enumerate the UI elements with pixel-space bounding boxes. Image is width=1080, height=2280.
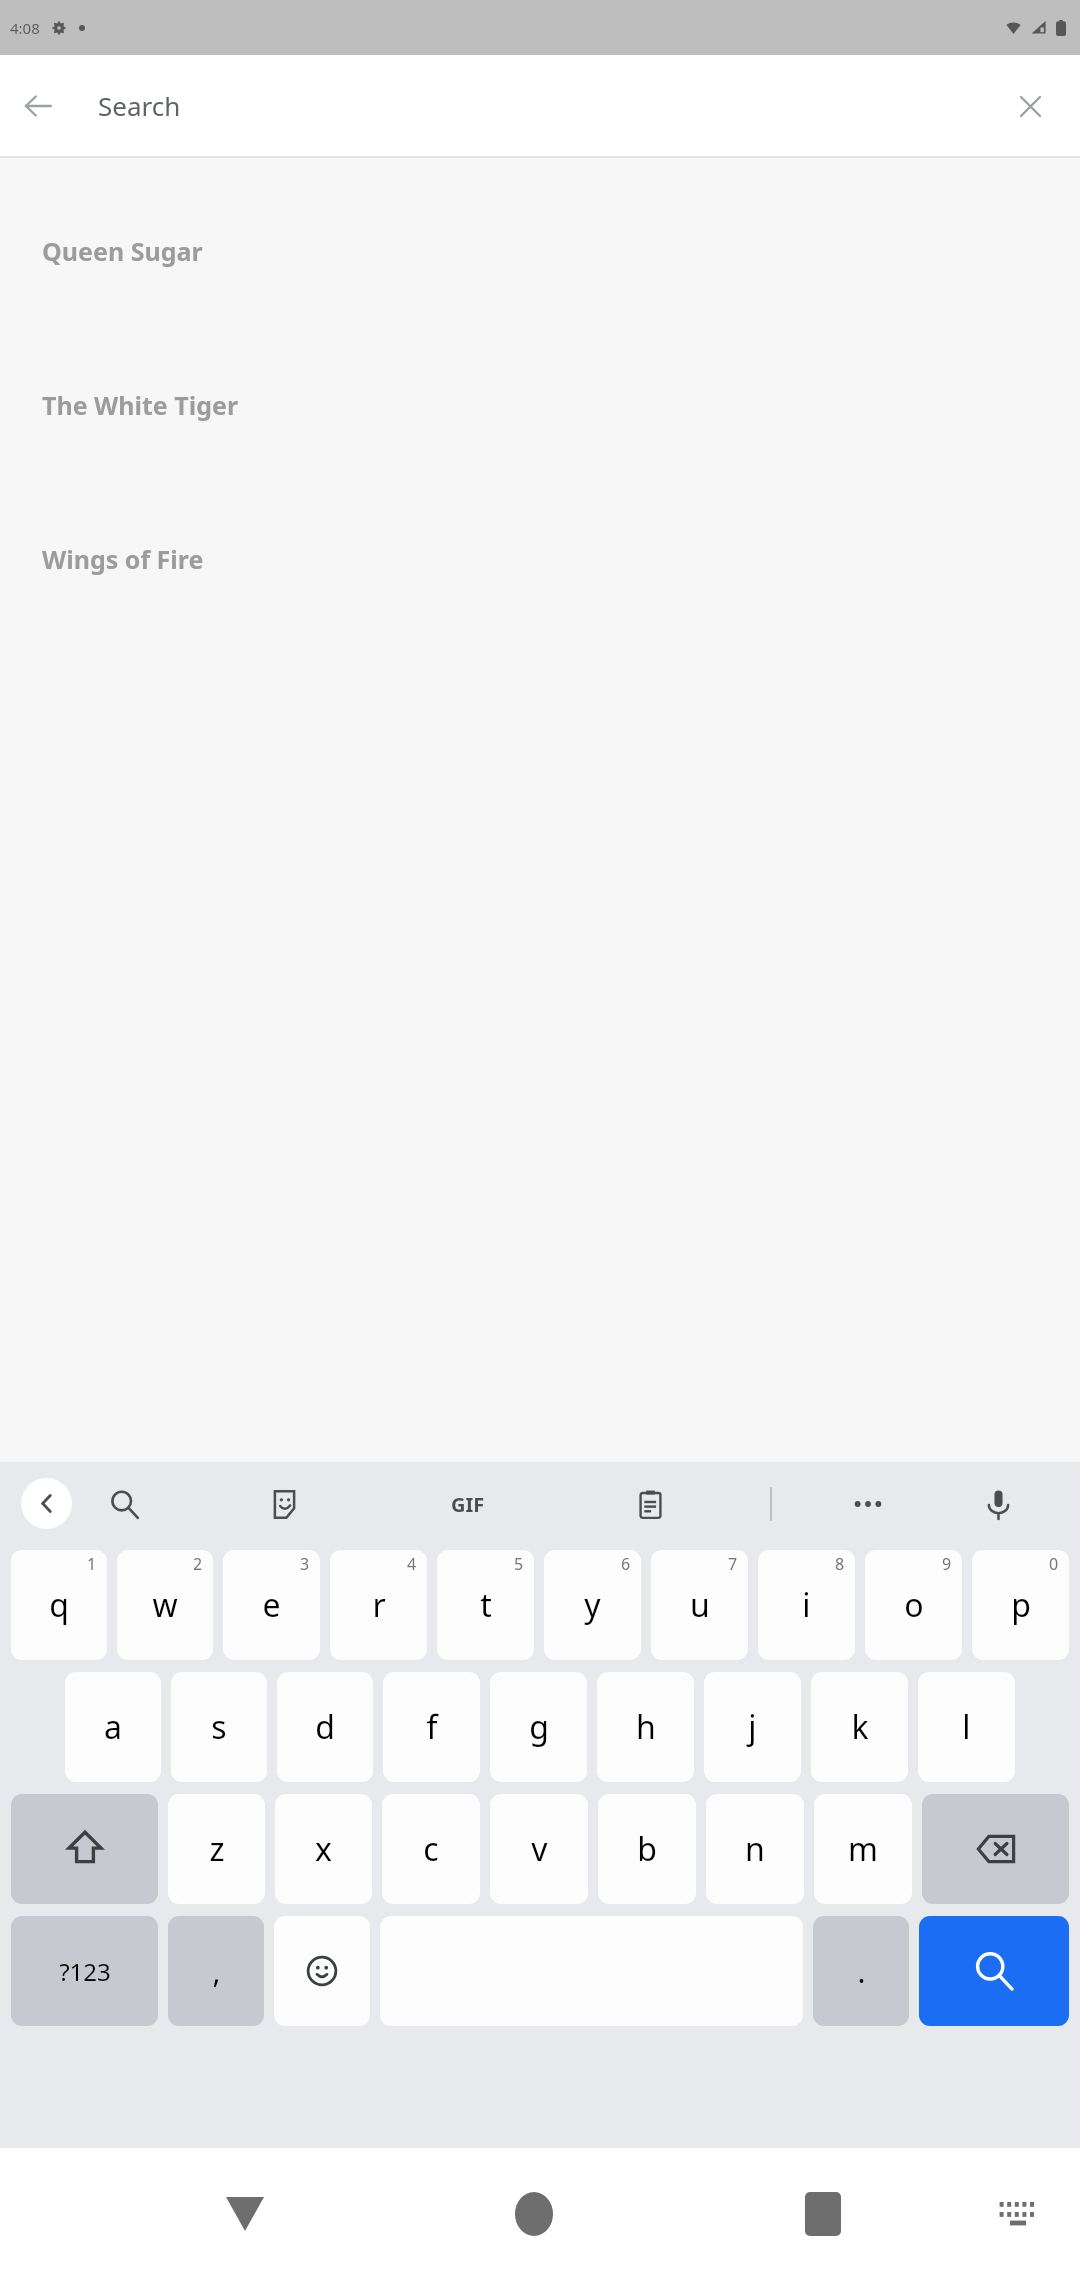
staticText: 3 <box>300 1553 310 1575</box>
staticText: The White Tiger <box>42 388 239 422</box>
staticText: h <box>636 1705 656 1749</box>
staticText: r <box>372 1583 386 1627</box>
staticText: f <box>426 1705 438 1749</box>
button[interactable]: a <box>65 1672 161 1782</box>
staticText: p <box>1011 1583 1031 1627</box>
staticText: w <box>152 1583 178 1627</box>
staticText: 4:08 <box>10 18 40 38</box>
button[interactable]: r <box>330 1550 427 1660</box>
button[interactable]: o <box>865 1550 962 1660</box>
button[interactable]: f <box>383 1672 480 1782</box>
button[interactable]: b <box>598 1794 696 1904</box>
button[interactable]: GIF <box>443 1479 493 1529</box>
staticText: u <box>690 1583 710 1627</box>
button[interactable]: c <box>382 1794 480 1904</box>
button[interactable]: Queen Sugar <box>0 174 1080 328</box>
button[interactable]: Home <box>489 2169 579 2259</box>
staticText: b <box>637 1827 657 1871</box>
staticText: 6 <box>621 1553 631 1575</box>
staticText: s <box>211 1705 227 1749</box>
button[interactable]: Switch keyboard <box>978 2174 1058 2254</box>
staticText: j <box>748 1705 757 1749</box>
button[interactable]: Clear search <box>992 68 1068 144</box>
button[interactable]: p <box>972 1550 1069 1660</box>
staticText: l <box>962 1705 971 1749</box>
button[interactable]: d <box>277 1672 373 1782</box>
staticText: Wings of Fire <box>42 542 204 576</box>
button[interactable]: Navigate up <box>0 68 76 144</box>
staticText: 9 <box>942 1553 952 1575</box>
staticText: m <box>848 1827 878 1871</box>
button[interactable]: Search <box>99 1479 149 1529</box>
button[interactable]: v <box>490 1794 588 1904</box>
button[interactable]: s <box>171 1672 267 1782</box>
staticText: q <box>49 1583 69 1627</box>
staticText: v <box>531 1827 548 1871</box>
button[interactable]: More options <box>843 1479 893 1529</box>
button[interactable]: Clipboard <box>625 1479 675 1529</box>
button[interactable]: j <box>704 1672 801 1782</box>
staticText: g <box>529 1705 549 1749</box>
staticText: t <box>480 1583 492 1627</box>
staticText: 8 <box>835 1553 845 1575</box>
button[interactable]: Backspace <box>922 1794 1069 1904</box>
staticText: ?123 <box>59 1955 111 1988</box>
staticText: z <box>209 1827 225 1871</box>
button[interactable]: l <box>918 1672 1015 1782</box>
button[interactable]: Back <box>200 2169 290 2259</box>
button[interactable]: Show toolbar <box>21 1478 72 1529</box>
staticText: e <box>262 1583 281 1627</box>
button[interactable]: x <box>275 1794 372 1904</box>
button[interactable]: t <box>437 1550 534 1660</box>
button[interactable]: w <box>117 1550 213 1660</box>
button[interactable]: g <box>490 1672 587 1782</box>
button[interactable]: n <box>706 1794 804 1904</box>
staticText: , <box>212 1951 221 1992</box>
button[interactable]: The White Tiger <box>0 328 1080 482</box>
button[interactable]: . <box>813 1916 909 2026</box>
button[interactable]: Stickers <box>259 1479 309 1529</box>
button[interactable]: m <box>814 1794 912 1904</box>
staticText: i <box>802 1583 811 1627</box>
button[interactable]: ?123 <box>11 1916 158 2026</box>
button[interactable]: u <box>651 1550 748 1660</box>
staticText: . <box>857 1951 866 1992</box>
staticText: x <box>315 1827 332 1871</box>
staticText: Queen Sugar <box>42 234 203 268</box>
button[interactable]: , <box>168 1916 264 2026</box>
staticText: d <box>315 1705 335 1749</box>
button[interactable]: e <box>223 1550 320 1660</box>
staticText: 4 <box>407 1553 417 1575</box>
staticText: a <box>104 1705 122 1749</box>
staticText: n <box>745 1827 765 1871</box>
button[interactable]: Recent apps <box>778 2169 868 2259</box>
button[interactable]: Search <box>919 1916 1069 2026</box>
button[interactable]: Wings of Fire <box>0 482 1080 636</box>
staticText: c <box>423 1827 439 1871</box>
staticText: y <box>584 1583 601 1627</box>
staticText: o <box>904 1583 924 1627</box>
staticText: Search <box>98 88 181 123</box>
button[interactable]: k <box>811 1672 908 1782</box>
staticText: 5 <box>514 1553 524 1575</box>
staticText: GIF <box>451 1491 485 1518</box>
button[interactable]: z <box>168 1794 265 1904</box>
staticText: 0 <box>1049 1553 1059 1575</box>
button[interactable]: i <box>758 1550 855 1660</box>
staticText: 7 <box>728 1553 738 1575</box>
button[interactable]: h <box>597 1672 694 1782</box>
button[interactable]: Voice input <box>973 1479 1023 1529</box>
button[interactable]: y <box>544 1550 641 1660</box>
button[interactable]: q <box>11 1550 107 1660</box>
staticText: 1 <box>87 1553 97 1575</box>
button[interactable]: Emoji <box>274 1916 370 2026</box>
staticText: k <box>851 1705 869 1749</box>
button[interactable]: Shift <box>11 1794 158 1904</box>
staticText: 2 <box>193 1553 203 1575</box>
